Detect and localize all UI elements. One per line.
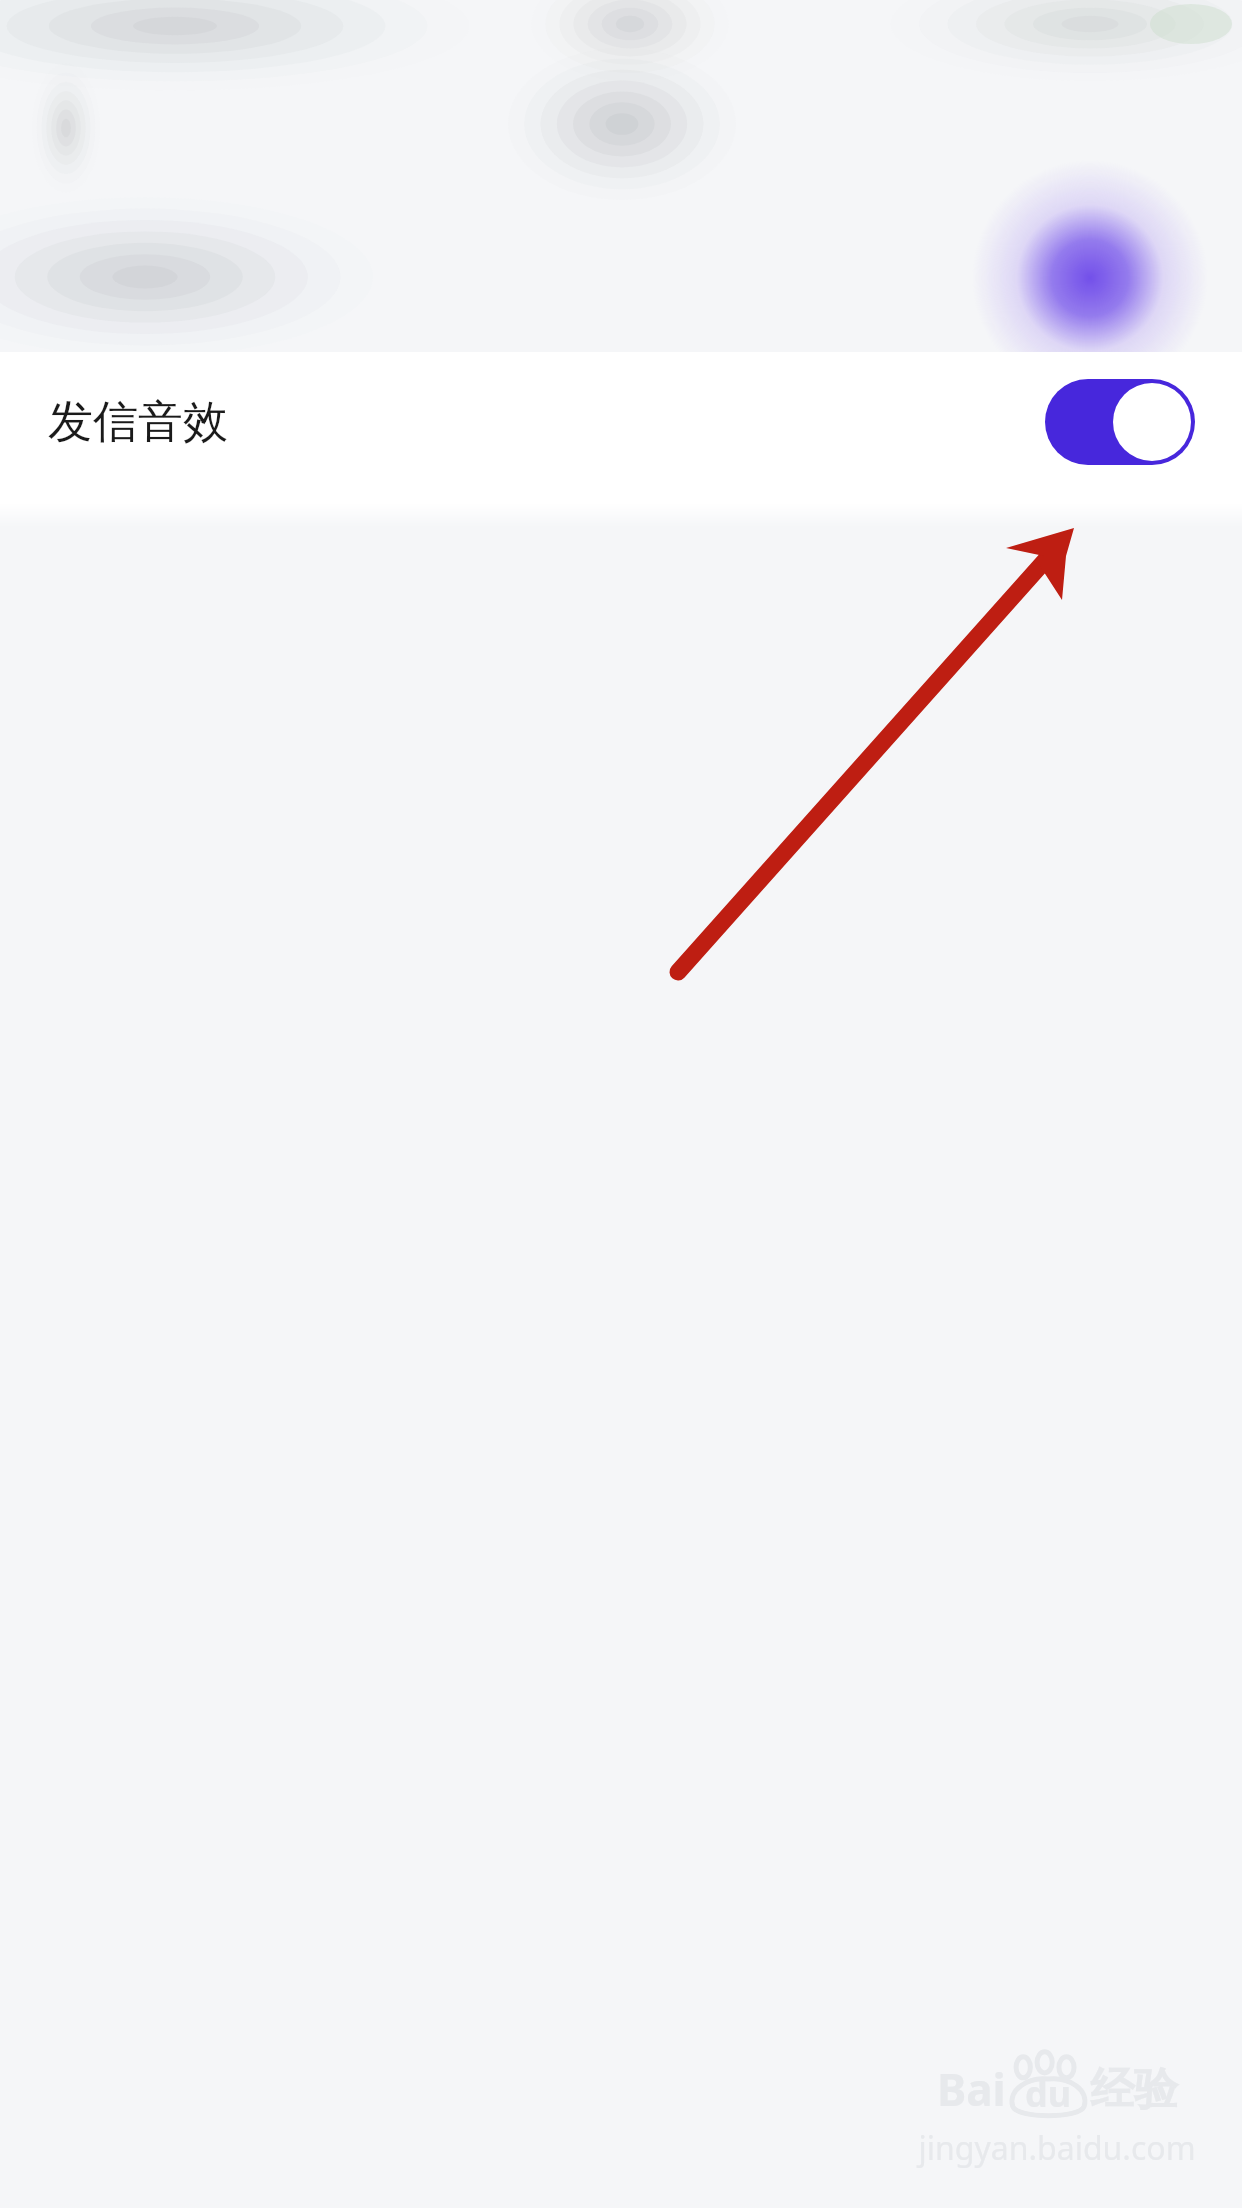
- staticText: 经验: [1090, 2062, 1178, 2117]
- staticText: jingyan.baidu.com: [918, 2126, 1196, 2170]
- button[interactable]: 发信音效: [0, 352, 1242, 492]
- staticText: 发信音效: [48, 394, 228, 451]
- staticText: du: [1025, 2069, 1072, 2118]
- staticText: Bai: [937, 2059, 1006, 2119]
- button[interactable]: 发信音效 开关: [1045, 379, 1195, 465]
